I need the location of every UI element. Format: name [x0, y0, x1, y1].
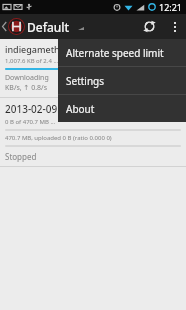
- staticText: indiegametheme...: [5, 43, 86, 55]
- staticText: KB/s, ↑ 0.8/s: [5, 83, 48, 93]
- button[interactable]: indiegametheme...: [0, 39, 186, 97]
- staticText: 1,007.6 KB of 2.4 ...: [5, 57, 59, 65]
- staticText: 12:21: [159, 1, 183, 13]
- staticText: Stopped: [5, 151, 37, 162]
- staticText: About: [66, 102, 95, 116]
- button[interactable]: Alternate speed limit on: [58, 39, 186, 66]
- staticText: 0 B of 470.7 MB ...: [5, 118, 56, 126]
- staticText: Default: [27, 19, 70, 35]
- button[interactable]: Navigate up: [0, 14, 29, 39]
- button[interactable]: 2013-02-09...: [0, 98, 186, 166]
- staticText: Alternate speed limit on: [66, 46, 178, 60]
- staticText: Settings: [66, 74, 105, 88]
- button[interactable]: More options: [164, 14, 186, 39]
- staticText: 470.7 MB, uploaded 0 B (ratio 0.000 0): [5, 134, 112, 142]
- staticText: Downloading: [5, 73, 49, 83]
- button[interactable]: Refresh: [134, 14, 164, 39]
- button[interactable]: About: [58, 95, 186, 122]
- staticText: 2013-02-09...: [5, 102, 66, 116]
- button[interactable]: Default: [27, 14, 84, 39]
- button[interactable]: Settings: [58, 67, 186, 94]
